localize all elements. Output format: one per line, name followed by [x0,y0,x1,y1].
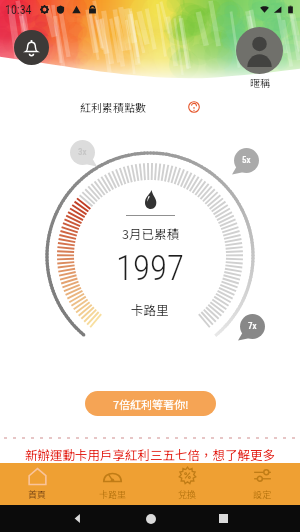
button[interactable]: Back [72,513,83,524]
staticText: 7x [248,321,257,332]
staticText: 設定 [253,488,272,501]
button[interactable]: Home [146,514,156,524]
staticText: 新辦運動卡用戶享紅利三五七倍，想了解更多 [25,445,276,463]
staticText: 卡路里 [131,300,169,318]
button[interactable]: 設定 [225,463,300,505]
staticText: 10:34 [5,3,32,17]
button[interactable]: 新辦運動卡用戶享紅利三五七倍，想了解更多 [0,438,300,463]
staticText: 暱稱 [250,75,270,89]
button[interactable]: 3x [68,138,97,167]
staticText: 7倍紅利等著你! [113,396,189,412]
button[interactable]: Notifications [14,30,49,65]
button[interactable]: Profile [236,27,283,89]
button[interactable]: 首頁 [0,463,75,505]
button[interactable]: 7x [238,312,267,341]
staticText: 5x [242,155,251,166]
staticText: 紅利累積點數 [80,99,146,115]
button[interactable]: 卡路里 [75,463,150,505]
staticText: 3x [78,147,87,158]
button[interactable]: 7倍紅利等著你! [85,391,216,416]
staticText: 1997 [116,248,185,289]
button[interactable]: 紅利累積點數 [58,94,242,119]
staticText: 3月已累積 [122,224,179,242]
staticText: 兌換 [178,488,197,501]
button[interactable]: 兌換 [150,463,225,505]
staticText: 首頁 [28,488,47,501]
staticText: 卡路里 [99,488,127,501]
button[interactable]: 5x [232,146,261,175]
